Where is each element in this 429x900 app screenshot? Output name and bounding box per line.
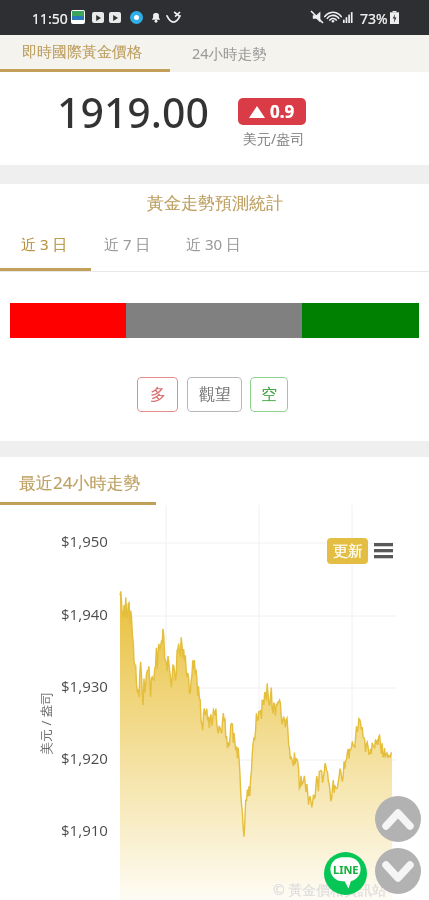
staticText: 近 30 日: [186, 234, 241, 254]
staticText: $1,910: [61, 820, 108, 838]
staticText: LINE: [333, 862, 359, 877]
button[interactable]: 近 7 日: [88, 224, 166, 271]
staticText: $1,930: [61, 676, 108, 694]
button[interactable]: 空: [250, 377, 288, 412]
staticText: 空: [261, 385, 277, 405]
staticText: 24小時走勢: [192, 43, 267, 63]
button[interactable]: LINE: [324, 852, 367, 895]
button[interactable]: 0.9: [238, 98, 306, 125]
staticText: 近 7 日: [104, 234, 151, 254]
staticText: 近 3 日: [21, 234, 68, 254]
staticText: 即時國際黃金價格: [22, 43, 142, 62]
staticText: 美元 / 盎司: [37, 691, 53, 755]
button[interactable]: 更新: [327, 538, 368, 564]
button[interactable]: 近 30 日: [166, 224, 260, 271]
staticText: 0.9: [270, 100, 295, 123]
staticText: 最近24小時走勢: [19, 471, 141, 494]
staticText: $1,950: [61, 531, 108, 549]
button[interactable]: 近 3 日: [0, 224, 88, 271]
button[interactable]: 即時國際黃金價格: [0, 35, 163, 72]
button[interactable]: 24小時走勢: [163, 35, 296, 72]
button[interactable]: Scroll up: [375, 796, 421, 842]
button[interactable]: Menu: [374, 543, 393, 558]
staticText: © 黃金價格資訊站: [273, 880, 387, 899]
button[interactable]: 多: [137, 377, 178, 412]
staticText: $1,940: [61, 604, 108, 622]
button[interactable]: Scroll down: [375, 848, 421, 894]
staticText: 多: [150, 385, 166, 405]
staticText: 11:50: [32, 9, 68, 28]
staticText: 黃金走勢預測統計: [147, 193, 283, 214]
staticText: 73%: [360, 9, 388, 28]
staticText: 1919.00: [57, 84, 209, 140]
staticText: 美元/盎司: [243, 129, 305, 148]
staticText: 更新: [333, 542, 363, 561]
button[interactable]: 觀望: [187, 377, 242, 412]
staticText: 觀望: [199, 385, 231, 405]
staticText: $1,920: [61, 748, 108, 766]
